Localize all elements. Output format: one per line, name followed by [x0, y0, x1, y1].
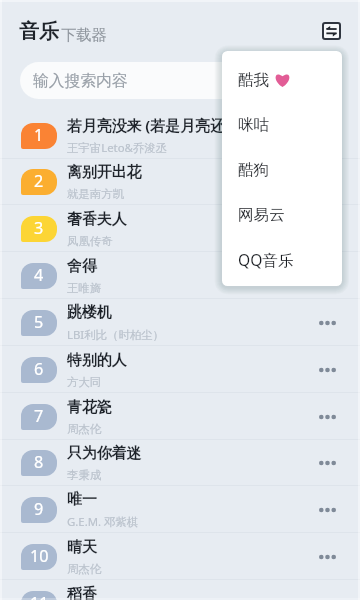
staticText: 3 — [34, 217, 44, 239]
staticText: 10 — [30, 545, 49, 567]
button[interactable]: 4 — [0, 252, 360, 299]
staticText: G.E.M. 邓紫棋 — [67, 514, 139, 530]
staticText: 唯一 — [67, 490, 97, 509]
button[interactable]: More options — [305, 252, 360, 299]
button[interactable]: 11 — [0, 580, 360, 600]
staticText: 1 — [34, 124, 44, 146]
staticText: 青花瓷 — [67, 398, 112, 417]
button[interactable]: More options — [305, 299, 360, 346]
staticText: 输入搜索内容 — [33, 71, 128, 91]
staticText: LBI利比（时柏尘） — [67, 327, 164, 343]
button[interactable]: QQ音乐 — [222, 237, 342, 282]
button[interactable]: 10 — [0, 533, 360, 580]
staticText: 奢香夫人 — [67, 210, 127, 229]
button[interactable]: More options — [305, 439, 360, 486]
staticText: 咪咕 — [238, 115, 270, 135]
staticText: 4 — [34, 264, 44, 286]
staticText: 离别开出花 — [67, 163, 142, 182]
button[interactable]: 1 — [0, 112, 360, 159]
staticText: QQ音乐 — [238, 249, 294, 270]
button[interactable]: 8 — [0, 439, 360, 486]
button[interactable]: 2 — [0, 158, 360, 205]
staticText: 7 — [34, 405, 44, 427]
staticText: 凤凰传奇 — [67, 234, 113, 248]
button[interactable]: 3 — [0, 205, 360, 252]
staticText: 晴天 — [67, 538, 97, 557]
staticText: 11 — [30, 592, 49, 600]
button[interactable]: More options — [305, 533, 360, 580]
staticText: 6 — [34, 358, 44, 380]
staticText: 王宇宙Leto&乔浚丞 — [67, 140, 168, 156]
button[interactable]: More options — [305, 486, 360, 533]
button[interactable]: Switch music source — [322, 22, 341, 40]
button[interactable]: 咪咕 — [222, 102, 342, 147]
button[interactable]: More options — [305, 346, 360, 393]
staticText: 9 — [34, 498, 44, 520]
staticText: 若月亮没来 (若是月亮还没来) — [67, 115, 260, 135]
staticText: 下载器 — [61, 25, 107, 44]
button[interactable]: More options — [305, 205, 360, 252]
button[interactable]: 输入搜索内容 — [20, 62, 339, 99]
staticText: 周杰伦 — [67, 562, 102, 576]
staticText: 音乐 — [19, 19, 59, 44]
button[interactable]: 7 — [0, 393, 360, 440]
staticText: 跳楼机 — [67, 303, 112, 322]
staticText: 网易云 — [238, 205, 285, 225]
staticText: 李秉成 — [67, 468, 102, 482]
staticText: 舍得 — [67, 257, 97, 276]
staticText: 方大同 — [67, 375, 102, 389]
staticText: 就是南方凯 — [67, 187, 124, 201]
button[interactable]: 6 — [0, 346, 360, 393]
staticText: 王唯旖 — [67, 281, 102, 295]
staticText: 稻香 — [67, 585, 97, 600]
staticText: 2 — [34, 170, 44, 192]
button[interactable]: More options — [305, 158, 360, 205]
button[interactable]: More options — [305, 112, 360, 159]
staticText: 酷我 — [238, 70, 270, 90]
button[interactable]: 酷狗 — [222, 147, 342, 192]
staticText: 5 — [34, 311, 44, 333]
staticText: 特别的人 — [67, 351, 127, 370]
button[interactable]: 网易云 — [222, 192, 342, 237]
staticText: 只为你着迷 — [67, 444, 142, 463]
staticText: 酷狗 — [238, 160, 270, 180]
button[interactable]: 酷我 — [222, 57, 342, 102]
button[interactable]: More options — [305, 393, 360, 440]
staticText: 周杰伦 — [67, 422, 102, 436]
button[interactable]: 5 — [0, 299, 360, 346]
staticText: 8 — [34, 451, 44, 473]
button[interactable]: 9 — [0, 486, 360, 533]
